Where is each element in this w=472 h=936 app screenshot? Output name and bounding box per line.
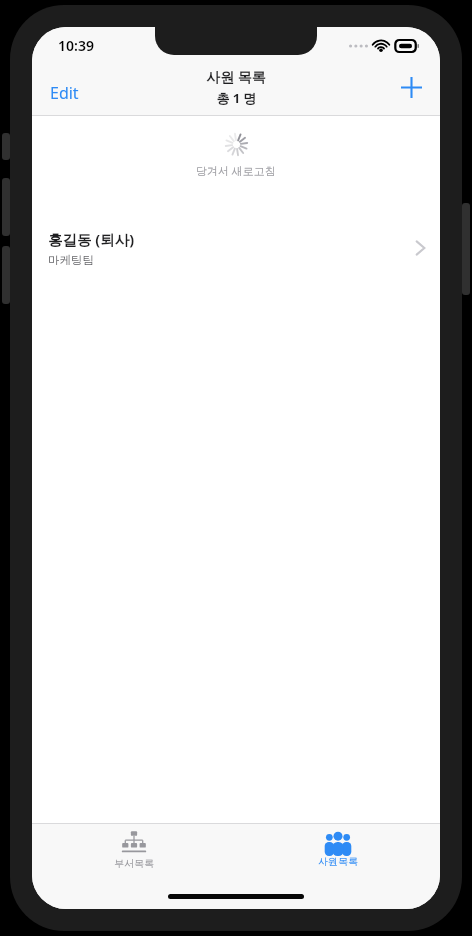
- staticText: 부서목록: [114, 857, 154, 870]
- staticText: 당겨서 새로고침: [196, 163, 276, 178]
- button[interactable]: 부서목록: [32, 824, 236, 879]
- button[interactable]: 사원목록: [236, 824, 440, 879]
- button[interactable]: 홍길동 (퇴사): [32, 220, 440, 275]
- staticText: 홍길동 (퇴사): [48, 229, 135, 249]
- staticText: 마케팅팀: [48, 253, 94, 267]
- button[interactable]: Edit: [38, 73, 91, 113]
- staticText: 사원목록: [318, 855, 358, 868]
- staticText: 10:39: [58, 36, 94, 55]
- staticText: 총 1 명: [216, 89, 257, 107]
- staticText: Edit: [50, 82, 79, 104]
- button[interactable]: Add employee: [389, 65, 434, 110]
- staticText: 사원 목록: [206, 67, 266, 86]
